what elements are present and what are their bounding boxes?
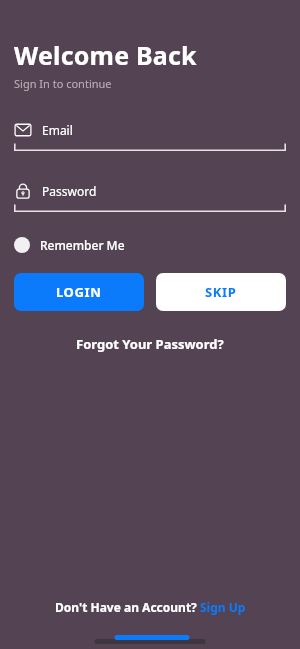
staticText: Don't Have an Account? (55, 599, 200, 615)
button[interactable]: Forgot Your Password? (70, 333, 230, 355)
button[interactable]: SKIP (156, 273, 286, 311)
staticText: SKIP (205, 283, 237, 301)
other: Email (14, 121, 32, 139)
button[interactable]: Password (14, 182, 286, 200)
button[interactable]: Remember Me (14, 235, 125, 255)
staticText: Sign In to continue (14, 76, 112, 91)
staticText: Password (42, 183, 97, 199)
staticText: Email (42, 122, 73, 138)
staticText: Remember Me (40, 237, 125, 253)
button[interactable]: LOGIN (14, 273, 144, 311)
other: Password (14, 182, 32, 200)
button[interactable]: Sign Up (200, 599, 246, 615)
button[interactable]: Email (14, 121, 286, 139)
staticText: Welcome Back (14, 38, 197, 72)
staticText: LOGIN (56, 283, 102, 301)
